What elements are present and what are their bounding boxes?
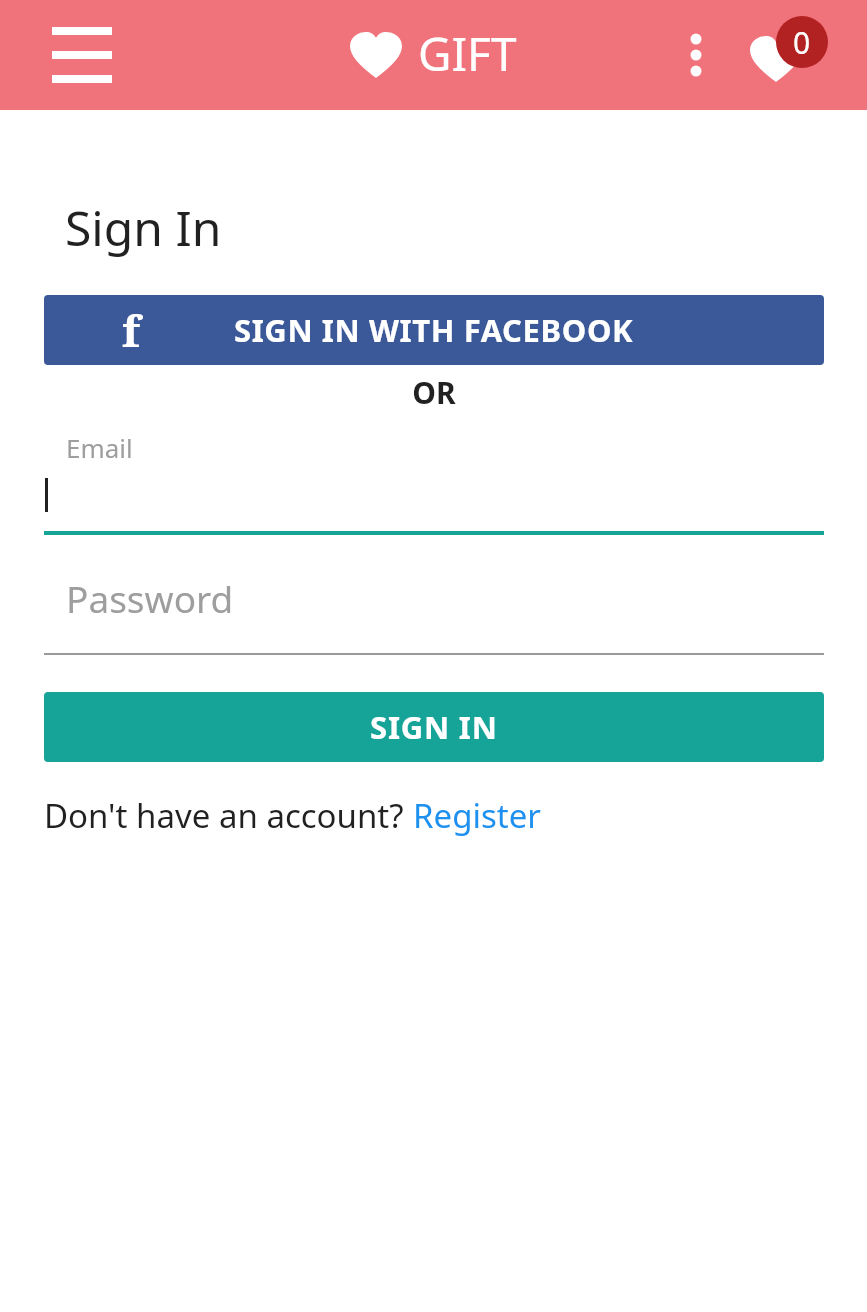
button[interactable]: f [44,295,824,365]
staticText: Sign In [65,195,222,260]
button[interactable]: More options [664,22,728,88]
button[interactable]: Email [44,426,824,549]
staticText: f [122,300,140,360]
button[interactable]: Favourites, 0 items [740,8,838,102]
button[interactable]: Register [413,793,541,838]
staticText: Email [66,430,133,465]
staticText: SIGN IN [370,706,498,748]
staticText: 0 [793,22,811,63]
staticText: GIFT [418,22,517,85]
staticText: Password [66,573,234,623]
button[interactable]: SIGN IN [44,692,824,762]
button[interactable]: Open navigation menu [34,22,130,88]
staticText: OR [412,372,456,413]
staticText: Register [413,793,541,838]
button[interactable]: Password [44,565,824,655]
staticText: Don't have an account? [44,793,413,838]
staticText: SIGN IN WITH FACEBOOK [234,309,634,351]
